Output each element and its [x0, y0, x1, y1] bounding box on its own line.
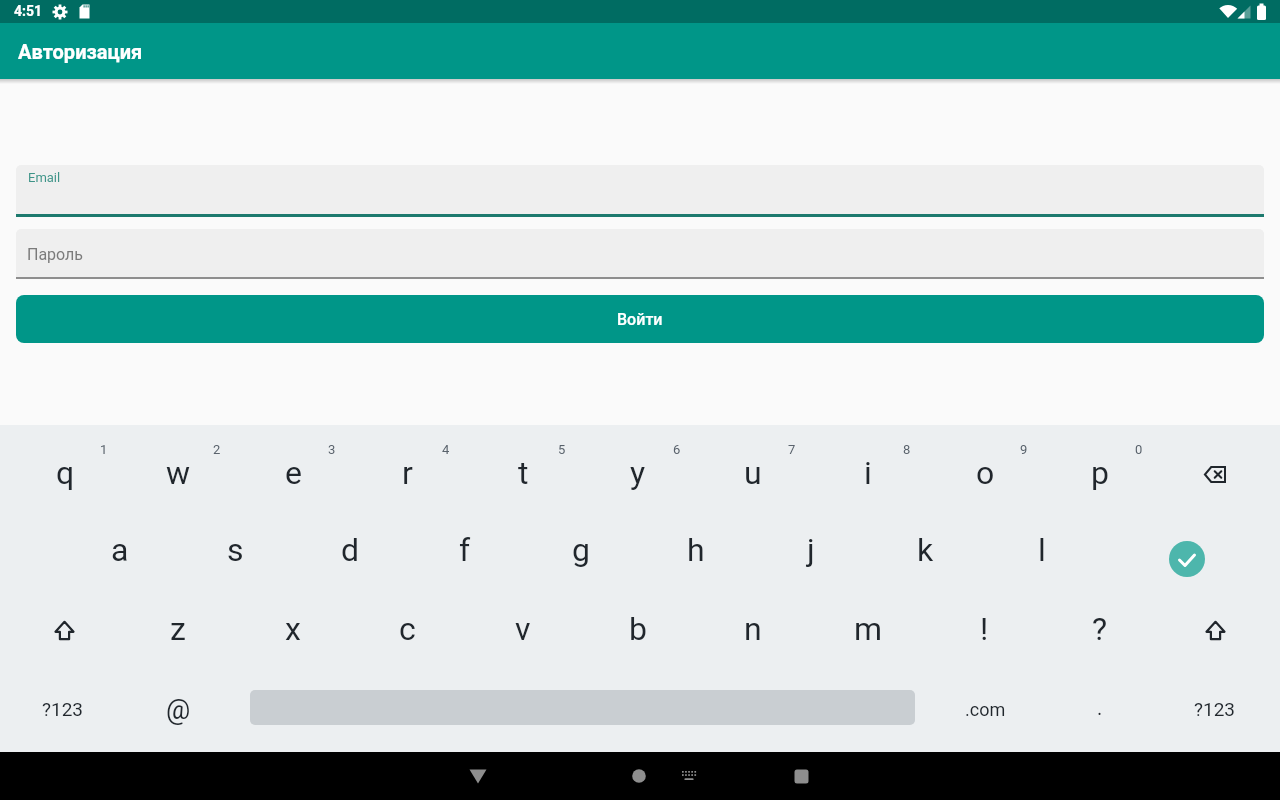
staticText: s: [227, 531, 244, 569]
staticText: .com: [965, 699, 1006, 720]
staticText: Пароль: [27, 245, 84, 264]
staticText: f: [459, 531, 471, 569]
button[interactable]: a: [65, 515, 175, 585]
staticText: 1: [100, 442, 108, 457]
staticText: 7: [788, 442, 796, 457]
button[interactable]: o: [930, 438, 1040, 508]
button[interactable]: x: [238, 594, 348, 664]
button[interactable]: v: [468, 594, 578, 664]
button[interactable]: j: [756, 515, 866, 585]
button[interactable]: m: [813, 594, 923, 664]
button[interactable]: @: [123, 675, 233, 745]
button[interactable]: [24, 600, 104, 660]
button[interactable]: [454, 752, 502, 800]
button[interactable]: p: [1045, 438, 1155, 508]
staticText: r: [402, 454, 413, 492]
button[interactable]: l: [987, 515, 1097, 585]
staticText: c: [399, 610, 416, 648]
staticText: m: [854, 610, 883, 648]
button[interactable]: f: [410, 515, 520, 585]
staticText: q: [56, 454, 75, 492]
staticText: .: [1097, 696, 1103, 719]
button[interactable]: t: [468, 438, 578, 508]
button[interactable]: Пароль: [16, 229, 1264, 279]
staticText: 0: [1135, 442, 1143, 457]
button[interactable]: e: [238, 438, 348, 508]
button[interactable]: y: [583, 438, 693, 508]
button[interactable]: [673, 752, 705, 800]
button[interactable]: u: [698, 438, 808, 508]
staticText: l: [1038, 531, 1046, 569]
staticText: o: [976, 454, 995, 492]
button[interactable]: !: [929, 594, 1039, 664]
button[interactable]: z: [123, 594, 233, 664]
staticText: n: [744, 610, 762, 648]
button[interactable]: [1175, 444, 1255, 504]
staticText: 2: [213, 442, 221, 457]
staticText: !: [980, 610, 989, 648]
button[interactable]: Email: [16, 165, 1264, 217]
staticText: 9: [1020, 442, 1028, 457]
staticText: @: [166, 694, 191, 726]
button[interactable]: g: [526, 515, 636, 585]
button[interactable]: k: [870, 515, 980, 585]
staticText: 5: [558, 442, 566, 457]
staticText: 4:51: [14, 3, 43, 19]
staticText: Авторизация: [18, 40, 143, 63]
staticText: v: [515, 610, 531, 648]
button[interactable]: c: [352, 594, 462, 664]
staticText: w: [166, 454, 191, 492]
staticText: 4: [442, 442, 450, 457]
button[interactable]: n: [698, 594, 808, 664]
staticText: 8: [903, 442, 911, 457]
button[interactable]: .: [1045, 672, 1155, 742]
staticText: y: [630, 454, 646, 492]
button[interactable]: [777, 752, 825, 800]
button[interactable]: q: [10, 438, 120, 508]
staticText: a: [111, 531, 129, 569]
staticText: u: [744, 454, 762, 492]
staticText: Email: [28, 170, 61, 185]
button[interactable]: d: [295, 515, 405, 585]
button[interactable]: ?123: [1160, 674, 1270, 744]
staticText: p: [1091, 454, 1109, 492]
staticText: x: [285, 610, 301, 648]
button[interactable]: ?123: [8, 674, 118, 744]
staticText: b: [629, 610, 647, 648]
staticText: z: [170, 610, 186, 648]
staticText: t: [518, 454, 529, 492]
staticText: 3: [328, 442, 336, 457]
button[interactable]: h: [641, 515, 751, 585]
button[interactable]: r: [352, 438, 462, 508]
staticText: 6: [673, 442, 681, 457]
button[interactable]: [615, 752, 663, 800]
button[interactable]: w: [123, 438, 233, 508]
button[interactable]: s: [180, 515, 290, 585]
button[interactable]: b: [583, 594, 693, 664]
staticText: Войти: [617, 310, 663, 329]
staticText: ?123: [1194, 698, 1236, 720]
staticText: e: [285, 454, 302, 492]
button[interactable]: .com: [930, 674, 1040, 744]
staticText: d: [341, 531, 360, 569]
staticText: ?: [1092, 610, 1108, 648]
button[interactable]: ?: [1045, 594, 1155, 664]
button[interactable]: [1169, 541, 1205, 577]
button[interactable]: i: [813, 438, 923, 508]
staticText: g: [572, 531, 590, 569]
staticText: ?123: [42, 698, 84, 720]
staticText: j: [807, 531, 815, 569]
staticText: i: [864, 454, 872, 492]
button[interactable]: q: [0, 425, 1280, 752]
button[interactable]: [1175, 600, 1255, 660]
staticText: h: [687, 531, 705, 569]
staticText: k: [917, 531, 934, 569]
button[interactable]: Войти: [16, 295, 1264, 343]
